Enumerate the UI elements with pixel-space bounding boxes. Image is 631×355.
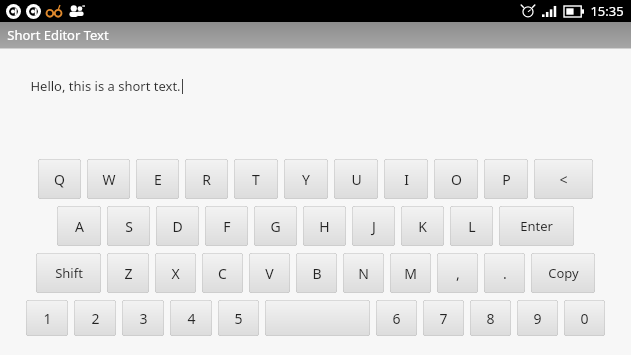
- staticText: 0: [580, 309, 589, 328]
- staticText: B: [312, 264, 322, 283]
- button[interactable]: D: [156, 206, 199, 246]
- button[interactable]: Copy: [531, 253, 595, 293]
- staticText: 9: [533, 309, 542, 328]
- button[interactable]: V: [249, 253, 290, 293]
- staticText: I: [404, 170, 409, 189]
- button[interactable]: 7: [423, 300, 464, 336]
- button[interactable]: .: [484, 253, 525, 293]
- staticText: 7: [439, 309, 448, 328]
- button[interactable]: ,: [437, 253, 478, 293]
- button[interactable]: Enter: [499, 206, 574, 246]
- staticText: R: [202, 170, 211, 189]
- button[interactable]: K: [401, 206, 444, 246]
- staticText: W: [102, 170, 116, 189]
- staticText: 1: [43, 309, 52, 328]
- staticText: ,: [456, 264, 460, 283]
- button[interactable]: E: [136, 159, 179, 199]
- staticText: D: [172, 217, 183, 236]
- button[interactable]: T: [234, 159, 278, 199]
- staticText: S: [125, 217, 133, 236]
- staticText: C: [218, 264, 227, 283]
- staticText: Z: [124, 264, 133, 283]
- staticText: Copy: [548, 264, 579, 282]
- button[interactable]: 5: [218, 300, 259, 336]
- button[interactable]: C: [202, 253, 243, 293]
- staticText: .: [503, 264, 507, 283]
- staticText: Y: [302, 170, 310, 189]
- staticText: L: [468, 217, 476, 236]
- staticText: T: [252, 170, 260, 189]
- button[interactable]: 4: [170, 300, 212, 336]
- staticText: U: [351, 170, 362, 189]
- button[interactable]: A: [57, 206, 101, 246]
- staticText: G: [270, 217, 281, 236]
- staticText: 3: [139, 309, 148, 328]
- staticText: Shift: [55, 264, 83, 282]
- button[interactable]: B: [296, 253, 337, 293]
- staticText: <: [559, 170, 568, 189]
- button[interactable]: Shift: [36, 253, 101, 293]
- button[interactable]: Z: [107, 253, 149, 293]
- button[interactable]: 8: [470, 300, 511, 336]
- staticText: H: [319, 217, 330, 236]
- button[interactable]: S: [107, 206, 150, 246]
- button[interactable]: 3: [122, 300, 164, 336]
- button[interactable]: G: [254, 206, 297, 246]
- staticText: M: [404, 264, 417, 283]
- staticText: Short Editor Text: [7, 26, 109, 44]
- button[interactable]: Y: [284, 159, 328, 199]
- button[interactable]: N: [343, 253, 384, 293]
- button[interactable]: L: [450, 206, 493, 246]
- button[interactable]: Q: [38, 159, 81, 199]
- button[interactable]: 0: [564, 300, 605, 336]
- staticText: A: [75, 217, 84, 236]
- button[interactable]: W: [87, 159, 130, 199]
- staticText: X: [171, 264, 180, 283]
- staticText: 5: [234, 309, 243, 328]
- button[interactable]: U: [334, 159, 378, 199]
- staticText: E: [154, 170, 162, 189]
- button[interactable]: R: [185, 159, 228, 199]
- staticText: P: [502, 170, 511, 189]
- button[interactable]: H: [303, 206, 346, 246]
- staticText: K: [418, 217, 427, 236]
- staticText: 4: [187, 309, 196, 328]
- staticText: 8: [486, 309, 495, 328]
- button[interactable]: Space: [265, 300, 370, 336]
- button[interactable]: J: [352, 206, 395, 246]
- staticText: 15:35: [590, 2, 624, 20]
- staticText: Enter: [520, 217, 553, 235]
- button[interactable]: Hello, this is a short text.: [0, 49, 631, 159]
- staticText: O: [451, 170, 462, 189]
- staticText: J: [372, 217, 376, 236]
- staticText: 2: [91, 309, 100, 328]
- staticText: 6: [392, 309, 401, 328]
- button[interactable]: I: [384, 159, 428, 199]
- button[interactable]: F: [205, 206, 248, 246]
- staticText: Hello, this is a short text.: [30, 77, 181, 95]
- button[interactable]: P: [484, 159, 528, 199]
- staticText: Q: [54, 170, 65, 189]
- button[interactable]: 6: [376, 300, 417, 336]
- button[interactable]: 2: [74, 300, 116, 336]
- button[interactable]: X: [155, 253, 196, 293]
- button[interactable]: M: [390, 253, 431, 293]
- staticText: F: [223, 217, 231, 236]
- button[interactable]: Backspace: [534, 159, 593, 199]
- staticText: V: [265, 264, 274, 283]
- button[interactable]: 9: [517, 300, 558, 336]
- button[interactable]: 1: [26, 300, 68, 336]
- staticText: N: [358, 264, 369, 283]
- button[interactable]: O: [434, 159, 478, 199]
